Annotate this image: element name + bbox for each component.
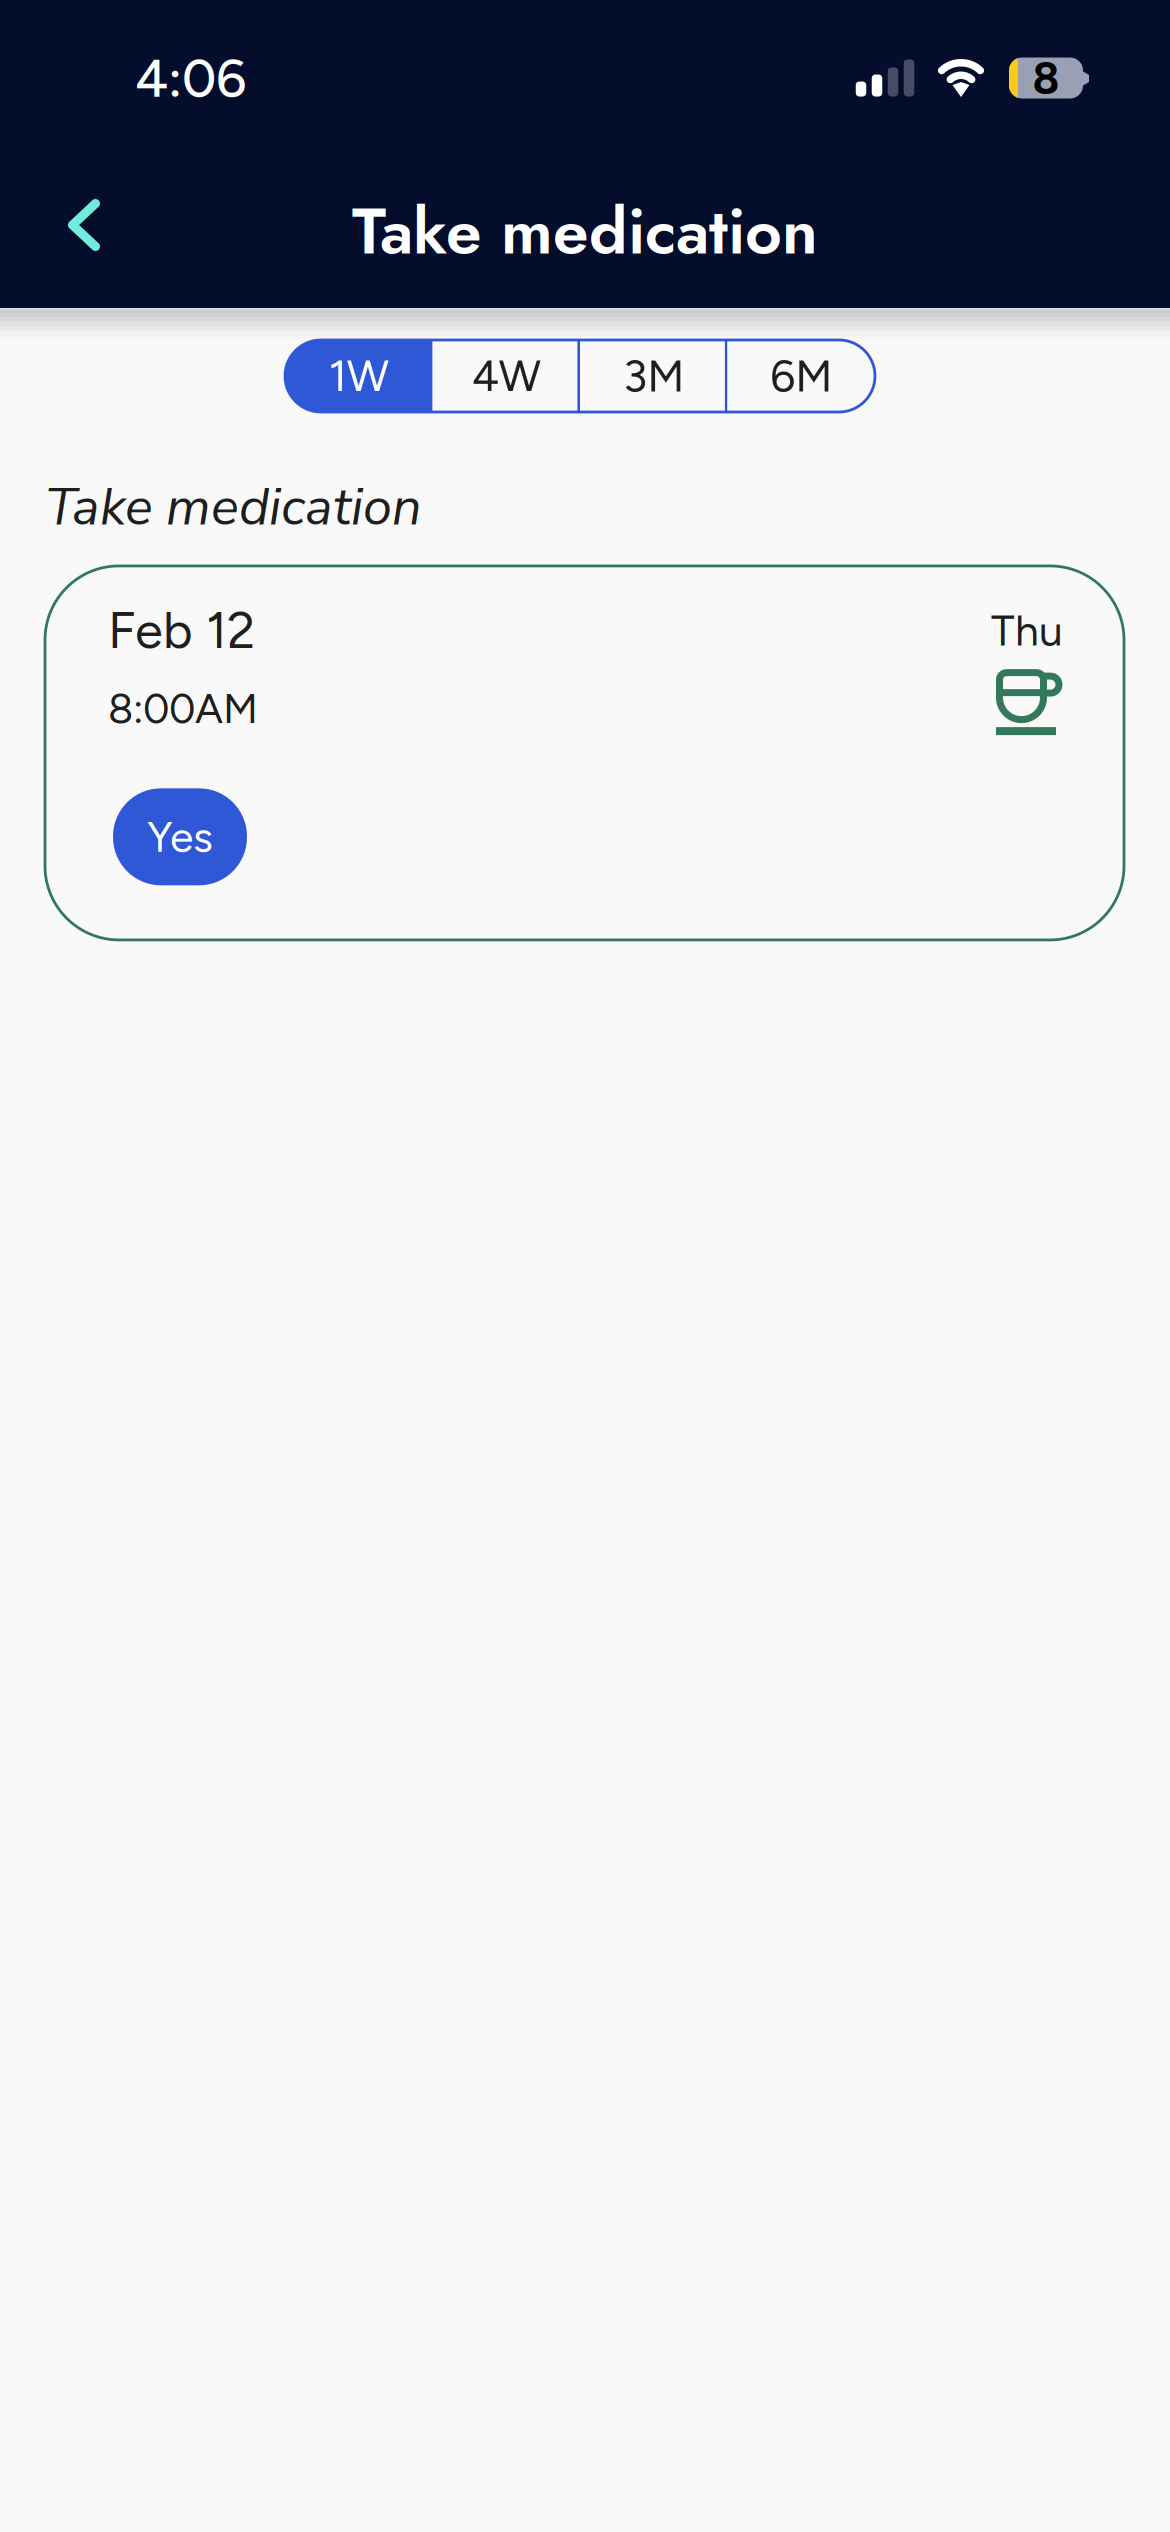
staticText: 6M bbox=[770, 350, 832, 402]
staticText: 4:06 bbox=[135, 46, 246, 110]
button[interactable]: Yes bbox=[113, 788, 247, 885]
staticText: Take medication bbox=[352, 185, 818, 277]
button[interactable]: 6M bbox=[727, 340, 875, 412]
staticText: 3M bbox=[623, 350, 684, 402]
staticText: 8:00AM bbox=[108, 684, 258, 733]
button[interactable]: 3M bbox=[580, 340, 727, 412]
staticText: Feb 12 bbox=[108, 600, 255, 661]
button[interactable]: Back bbox=[0, 171, 146, 279]
button[interactable]: 1W bbox=[285, 340, 432, 412]
staticText: Yes bbox=[147, 811, 213, 862]
staticText: 8 bbox=[1032, 52, 1059, 104]
staticText: 1W bbox=[329, 350, 389, 402]
button[interactable]: 4W bbox=[432, 340, 580, 412]
staticText: 4W bbox=[472, 350, 541, 402]
staticText: Take medication bbox=[45, 472, 422, 543]
staticText: Thu bbox=[991, 605, 1063, 656]
